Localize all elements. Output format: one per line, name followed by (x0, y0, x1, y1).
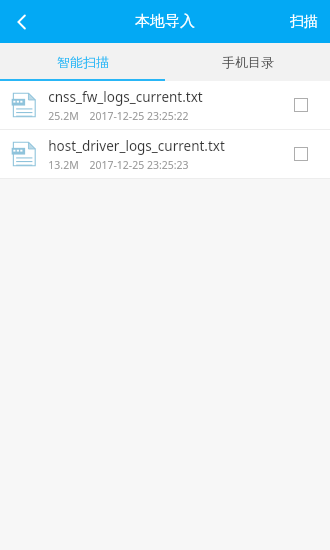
staticText: host_driver_logs_current.txt (48, 137, 225, 155)
staticText: 25.2M (48, 109, 79, 123)
button[interactable]: 扫描 (278, 0, 330, 43)
staticText: 2017-12-25 23:25:22 (89, 109, 189, 123)
button[interactable]: cnss_fw_logs_current.txt (0, 81, 330, 129)
staticText: 2017-12-25 23:25:23 (89, 158, 189, 172)
staticText: 智能扫描 (57, 54, 109, 70)
staticText: cnss_fw_logs_current.txt (48, 88, 203, 106)
button[interactable]: Select file (282, 135, 320, 173)
button[interactable]: host_driver_logs_current.txt (0, 130, 330, 178)
button[interactable]: Back (0, 0, 44, 43)
staticText: 本地导入 (135, 12, 195, 31)
button[interactable]: Select file (282, 86, 320, 124)
staticText: 13.2M (48, 158, 79, 172)
button[interactable]: 智能扫描 (0, 43, 165, 81)
staticText: 手机目录 (222, 54, 274, 70)
staticText: 扫描 (290, 13, 318, 31)
button[interactable]: 手机目录 (165, 43, 330, 81)
